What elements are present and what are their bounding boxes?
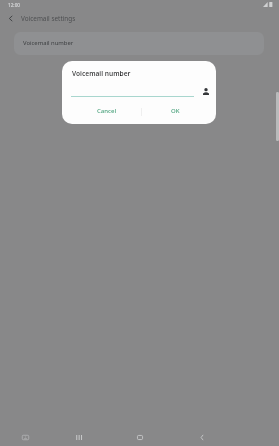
button[interactable]: Recent apps xyxy=(68,426,90,446)
button[interactable]: Voicemail number xyxy=(14,32,264,55)
button[interactable]: Home xyxy=(129,426,151,446)
button[interactable]: OK xyxy=(160,104,190,118)
staticText: Voicemail number xyxy=(72,69,131,78)
button[interactable]: Navigate up xyxy=(0,11,279,25)
staticText: OK xyxy=(171,107,180,115)
staticText: Voicemail settings xyxy=(21,14,76,23)
button[interactable]: Navigate up xyxy=(5,13,16,24)
staticText: Cancel xyxy=(97,107,117,115)
button[interactable]: Hide keyboard xyxy=(14,426,36,446)
button[interactable]: Cancel xyxy=(89,104,125,118)
staticText: Voicemail number xyxy=(23,39,74,47)
staticText: 12:00 xyxy=(8,2,21,8)
button[interactable]: Choose from contacts xyxy=(199,85,212,98)
button[interactable]: Back xyxy=(191,426,213,446)
